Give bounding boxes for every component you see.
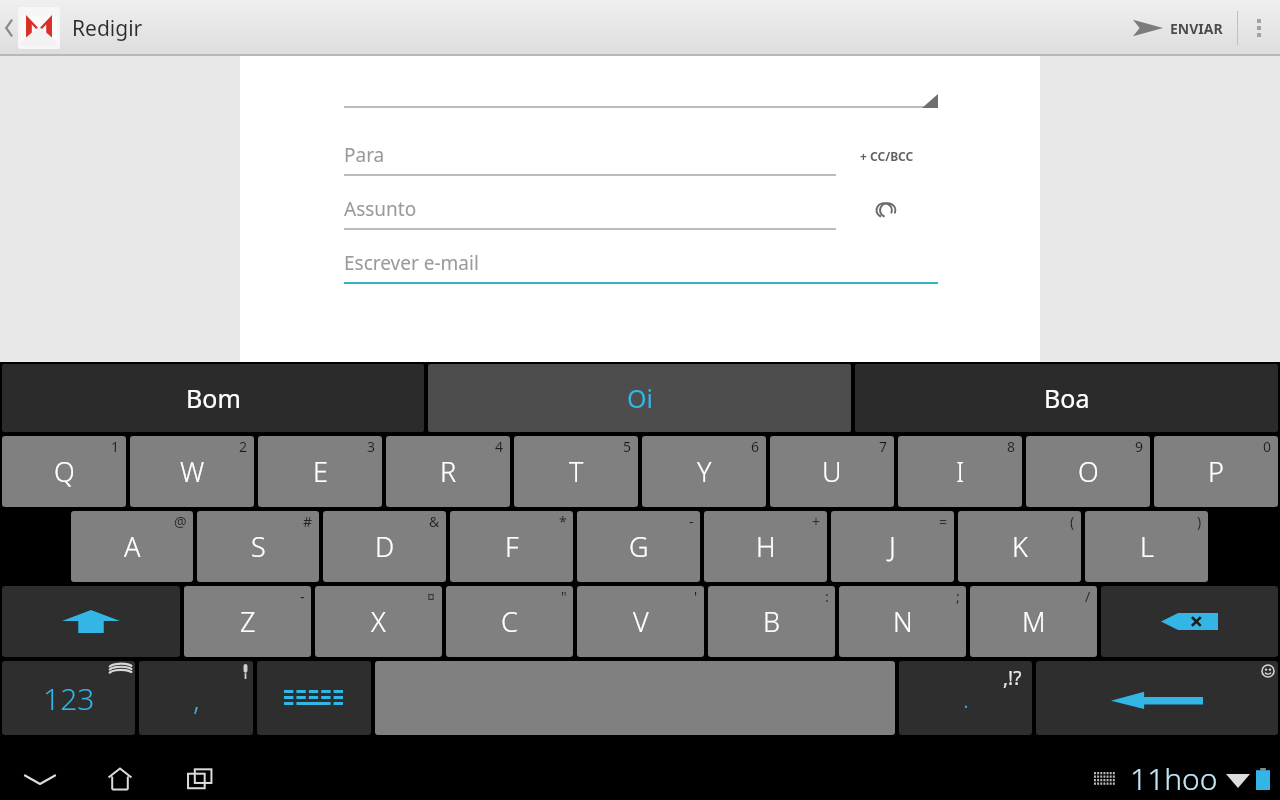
button[interactable]: B — [708, 586, 835, 657]
staticText: C — [501, 603, 518, 640]
staticText: P — [1208, 453, 1224, 490]
button[interactable]: ENVIAR — [1119, 0, 1237, 56]
button[interactable]: Y — [642, 436, 766, 507]
staticText: ; — [956, 587, 960, 606]
staticText: Escrever e-mail — [344, 250, 479, 276]
staticText: 6 — [751, 437, 760, 456]
button[interactable]: Home — [80, 757, 160, 800]
staticText: # — [303, 512, 313, 531]
button[interactable]: U — [770, 436, 894, 507]
button[interactable]: + CC/BCC — [836, 148, 938, 164]
button[interactable]: D — [323, 511, 446, 582]
staticText: " — [561, 587, 567, 606]
staticText: Bom — [186, 381, 241, 415]
button[interactable]: X — [315, 586, 442, 657]
button[interactable]: 123 — [2, 661, 135, 735]
button[interactable]: O — [1026, 436, 1150, 507]
staticText: O — [1078, 453, 1099, 490]
button[interactable]: W — [130, 436, 254, 507]
staticText: ' — [694, 587, 698, 606]
button[interactable]: G — [577, 511, 700, 582]
button[interactable]: S — [197, 511, 319, 582]
button[interactable]: , — [139, 661, 253, 735]
button[interactable]: C — [446, 586, 573, 657]
button[interactable]: Shift — [2, 586, 180, 657]
button[interactable]: F — [450, 511, 573, 582]
staticText: + — [812, 512, 821, 531]
button[interactable]: Para — [344, 136, 836, 176]
staticText: - — [300, 587, 305, 606]
staticText: , — [193, 678, 200, 719]
staticText: + CC/BCC — [860, 148, 914, 164]
staticText: K — [1012, 528, 1028, 565]
button[interactable]: L — [1085, 511, 1208, 582]
button[interactable]: I — [898, 436, 1022, 507]
staticText: G — [629, 528, 649, 565]
staticText: B — [763, 603, 781, 640]
button[interactable]: H — [704, 511, 827, 582]
staticText: H — [756, 528, 776, 565]
button[interactable]: Enter — [1036, 661, 1278, 735]
other: Back — [2, 15, 16, 41]
staticText: ENVIAR — [1170, 19, 1223, 38]
staticText: Q — [54, 453, 75, 490]
staticText: V — [633, 603, 649, 640]
staticText: 11hoo — [1130, 758, 1218, 799]
other: Attach file — [876, 201, 898, 219]
button[interactable]: Assunto — [344, 190, 836, 230]
staticText: I — [956, 453, 965, 490]
button[interactable]: E — [258, 436, 382, 507]
staticText: Boa — [1044, 381, 1090, 415]
button[interactable]: Attach file — [836, 201, 938, 219]
staticText: 0 — [1263, 437, 1272, 456]
staticText: Assunto — [344, 196, 417, 222]
button[interactable]: V — [577, 586, 704, 657]
button[interactable]: Z — [184, 586, 311, 657]
staticText: T — [569, 453, 584, 490]
button[interactable]: Back — [0, 7, 149, 49]
button[interactable]: R — [386, 436, 510, 507]
button[interactable]: J — [831, 511, 954, 582]
button[interactable]: Hide keyboard — [0, 757, 80, 800]
staticText: ) — [1197, 512, 1202, 531]
button[interactable]: . — [899, 661, 1032, 735]
staticText: W — [180, 453, 205, 490]
staticText: L — [1140, 528, 1154, 565]
staticText: * — [559, 512, 567, 531]
button[interactable]: Oi — [428, 364, 851, 432]
staticText: D — [375, 528, 395, 565]
staticText: F — [505, 528, 519, 565]
staticText: 9 — [1135, 437, 1144, 456]
staticText: N — [893, 603, 913, 640]
staticText: 8 — [1007, 437, 1016, 456]
button[interactable]: Backspace — [1101, 586, 1278, 657]
staticText: 4 — [495, 437, 504, 456]
button[interactable]: More options — [1238, 0, 1280, 56]
button[interactable]: Q — [2, 436, 126, 507]
staticText: Oi — [627, 381, 653, 415]
button[interactable]: N — [839, 586, 966, 657]
staticText: 1 — [111, 437, 120, 456]
staticText: = — [939, 512, 948, 531]
staticText: . — [963, 682, 969, 715]
staticText: 2 — [239, 437, 248, 456]
button[interactable]: Keyboard settings — [257, 661, 371, 735]
button[interactable]: Boa — [855, 364, 1278, 432]
button[interactable]: Recent apps — [160, 757, 240, 800]
staticText: / — [1085, 587, 1091, 606]
button[interactable]: Bom — [2, 364, 424, 432]
staticText: A — [124, 528, 141, 565]
button[interactable]: K — [958, 511, 1081, 582]
staticText: 5 — [623, 437, 632, 456]
button[interactable]: M — [970, 586, 1097, 657]
staticText: Redigir — [72, 14, 143, 43]
staticText: Y — [697, 453, 712, 490]
staticText: - — [689, 512, 694, 531]
button[interactable]: Escrever e-mail — [344, 244, 938, 284]
button[interactable]: A — [71, 511, 193, 582]
staticText: U — [822, 453, 842, 490]
staticText: @ — [174, 512, 187, 531]
button[interactable]: T — [514, 436, 638, 507]
button[interactable]: P — [1154, 436, 1278, 507]
